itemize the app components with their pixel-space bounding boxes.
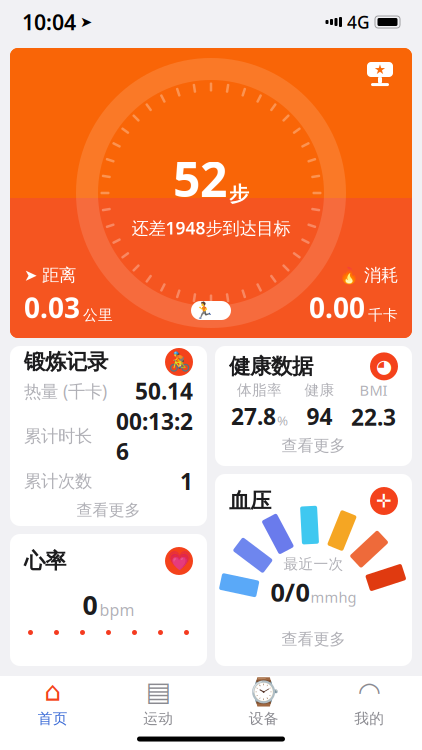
staticText: BMI — [359, 380, 387, 400]
staticText: % — [277, 411, 288, 429]
staticText: ◕ — [376, 356, 392, 377]
staticText: 🔥 — [339, 266, 359, 284]
staticText: 🏃 — [194, 301, 214, 320]
staticText: 累计时长 — [24, 425, 92, 447]
staticText: 10:04 — [22, 8, 76, 36]
staticText: 💗 — [167, 550, 190, 572]
staticText: 还差1948步到达目标 — [131, 216, 290, 239]
staticText: ➤ — [24, 266, 37, 284]
button[interactable]: 查看更多 — [229, 625, 398, 653]
staticText: 0.00 — [309, 289, 365, 326]
staticText: 🚴 — [167, 351, 190, 373]
staticText: 查看更多 — [76, 500, 140, 520]
staticText: 27.8 — [231, 401, 276, 431]
staticText: 首页 — [38, 710, 68, 728]
staticText: 公里 — [83, 306, 113, 324]
staticText: ▤ — [146, 676, 171, 707]
staticText: 血压 — [229, 488, 271, 514]
staticText: 千卡 — [368, 306, 398, 324]
staticText: 锻炼记录 — [24, 349, 108, 375]
button[interactable]: ▤ — [105, 672, 211, 732]
button[interactable]: ⌂ — [0, 672, 105, 732]
staticText: 00:13:26 — [116, 406, 193, 466]
staticText: 52 — [173, 147, 227, 210]
staticText: 健康数据 — [229, 353, 313, 379]
button[interactable]: 健康数据 — [215, 346, 412, 466]
button[interactable]: 查看更多 — [229, 432, 398, 460]
staticText: 设备 — [249, 710, 279, 728]
staticText: 健康 — [304, 381, 334, 399]
staticText: ⌂ — [44, 676, 61, 707]
staticText: bpm — [99, 599, 134, 620]
staticText: ➤ — [80, 14, 92, 30]
staticText: 消耗 — [364, 264, 398, 286]
staticText: 查看更多 — [281, 629, 345, 649]
staticText: 步 — [229, 182, 249, 206]
button[interactable]: 查看更多 — [24, 496, 193, 524]
staticText: mmhg — [310, 587, 356, 607]
staticText: 运动 — [143, 710, 173, 728]
staticText: 0 — [82, 587, 97, 622]
staticText: 我的 — [354, 710, 384, 728]
staticText: 22.3 — [351, 402, 396, 432]
staticText: 热量 (千卡) — [24, 379, 107, 402]
staticText: 1 — [180, 466, 193, 496]
staticText: 94 — [306, 401, 332, 431]
staticText: ⌚ — [247, 676, 280, 707]
button[interactable]: 血压 — [215, 474, 412, 666]
staticText: 4G — [347, 10, 370, 33]
button[interactable]: ◠ — [316, 672, 422, 732]
staticText: 0.03 — [24, 289, 80, 326]
button[interactable]: 成就 — [358, 54, 402, 94]
staticText: 体脂率 — [237, 381, 282, 399]
staticText: ✛ — [376, 490, 392, 512]
button[interactable]: 心率 — [10, 534, 207, 666]
staticText: 累计次数 — [24, 471, 92, 492]
staticText: 查看更多 — [281, 436, 345, 456]
staticText: ◠ — [358, 676, 381, 707]
staticText: 0/0 — [270, 575, 309, 609]
button[interactable]: 锻炼记录 — [10, 346, 207, 526]
staticText: 距离 — [42, 264, 76, 286]
staticText: 心率 — [24, 548, 66, 574]
staticText: 最近一次 — [283, 555, 343, 573]
staticText: ★ — [374, 62, 386, 77]
button[interactable]: ⌚ — [211, 672, 316, 732]
staticText: 50.14 — [135, 376, 193, 406]
